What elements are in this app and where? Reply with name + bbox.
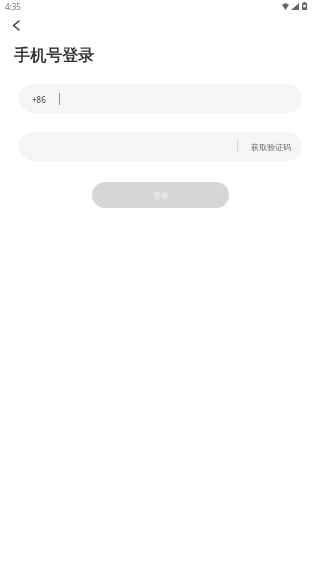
button[interactable]: 获取验证码 bbox=[238, 132, 302, 161]
other: Signal bbox=[291, 3, 299, 10]
staticText: 4:35 bbox=[5, 1, 21, 12]
button[interactable]: +86 bbox=[19, 84, 302, 113]
staticText: 登录 bbox=[153, 190, 169, 200]
other: Wifi bbox=[282, 3, 289, 10]
button[interactable]: 获取验证码 bbox=[19, 132, 302, 161]
staticText: 手机号登录 bbox=[14, 46, 94, 66]
other: Battery bbox=[302, 2, 307, 10]
button[interactable]: Back bbox=[4, 13, 28, 37]
staticText: 获取验证码 bbox=[251, 142, 291, 152]
button[interactable]: 登录 bbox=[92, 182, 229, 208]
staticText: +86 bbox=[32, 94, 46, 105]
